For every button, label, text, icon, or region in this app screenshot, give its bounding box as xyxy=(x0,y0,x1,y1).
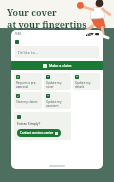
staticText: at your fingertips xyxy=(7,18,87,30)
button[interactable]: Update my details xyxy=(73,73,100,90)
staticText: Extras Simply? xyxy=(17,121,41,126)
other: View my claims xyxy=(16,94,20,98)
other: Request a pre- approval xyxy=(16,75,20,79)
button[interactable]: Request a pre- approval xyxy=(14,73,42,90)
button[interactable]: I'd like to... xyxy=(15,46,99,58)
button[interactable]: View my claims xyxy=(14,92,42,109)
staticText: Contact services centre xyxy=(20,131,54,135)
button[interactable]: Update my cover xyxy=(44,73,71,90)
staticText: Update my details xyxy=(75,81,98,88)
staticText: I'd like to... xyxy=(18,50,39,55)
staticText: 9:30 xyxy=(15,32,21,36)
staticText: Make a claim xyxy=(49,63,72,68)
button[interactable]: Contact services centre xyxy=(17,129,61,137)
staticText: Update my payment details xyxy=(46,100,69,107)
button[interactable]: Update my payment details xyxy=(44,92,71,109)
other: Update my details xyxy=(75,75,79,79)
other: Update my payment details xyxy=(46,94,50,98)
staticText: View my claims xyxy=(16,100,38,104)
staticText: Update my cover xyxy=(46,81,69,88)
button[interactable]: Extras Simply? xyxy=(14,112,71,140)
button[interactable]: Make a claim xyxy=(11,61,103,70)
staticText: Request a pre- approval xyxy=(16,81,37,88)
other: Update my cover xyxy=(46,75,50,79)
staticText: Your cover xyxy=(7,6,57,18)
